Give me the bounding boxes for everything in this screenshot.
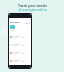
staticText: My needs bbox=[10, 21, 20, 24]
staticText: Track your needs bbox=[18, 3, 47, 8]
staticText: see all bbox=[25, 22, 30, 24]
button[interactable] bbox=[10, 25, 15, 29]
button[interactable] bbox=[10, 41, 30, 49]
staticText: all in one place with us bbox=[18, 8, 47, 12]
button[interactable] bbox=[10, 49, 30, 57]
button[interactable] bbox=[10, 57, 30, 65]
button[interactable] bbox=[10, 33, 30, 41]
